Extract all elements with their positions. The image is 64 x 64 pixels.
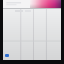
button[interactable]: Featured banner — [30, 0, 61, 8]
button[interactable] — [3, 0, 30, 8]
button[interactable]: Primary action — [5, 54, 9, 57]
